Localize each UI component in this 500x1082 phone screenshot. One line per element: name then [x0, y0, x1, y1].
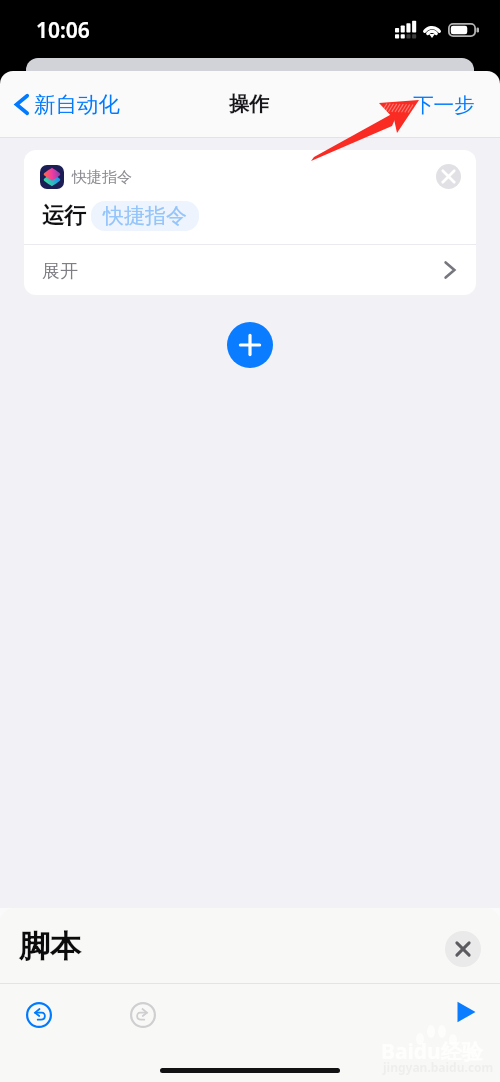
- button[interactable]: Close: [445, 931, 481, 967]
- staticText: Baidu经验: [381, 1037, 483, 1066]
- button[interactable]: 快捷指令: [24, 150, 476, 244]
- button[interactable]: Run: [450, 998, 482, 1026]
- staticText: 快捷指令: [72, 168, 132, 187]
- staticText: 脚本: [19, 927, 81, 966]
- button[interactable]: 新自动化: [11, 87, 128, 122]
- staticText: 操作: [229, 92, 269, 117]
- button[interactable]: 快捷指令: [91, 201, 199, 231]
- button[interactable]: Redo: [130, 1002, 156, 1028]
- staticText: 展开: [42, 260, 78, 283]
- button[interactable]: 下一步: [399, 86, 500, 124]
- staticText: 新自动化: [34, 91, 120, 118]
- button[interactable]: 展开: [24, 245, 476, 295]
- staticText: jingyan.baidu.com: [383, 1059, 494, 1075]
- button[interactable]: Undo: [26, 1002, 52, 1028]
- button[interactable]: Add action: [227, 322, 273, 368]
- staticText: 10:06: [36, 16, 90, 45]
- button[interactable]: Remove action: [436, 164, 461, 189]
- staticText: 快捷指令: [103, 203, 187, 229]
- staticText: 运行: [42, 202, 86, 230]
